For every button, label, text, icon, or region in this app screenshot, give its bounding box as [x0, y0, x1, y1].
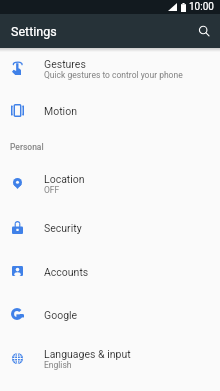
- staticText: Motion: [44, 105, 77, 117]
- staticText: Location: [44, 173, 85, 185]
- staticText: English: [44, 360, 72, 370]
- staticText: Accounts: [44, 266, 89, 278]
- button[interactable]: Google: [0, 292, 220, 336]
- button[interactable]: Accounts: [0, 249, 220, 293]
- staticText: OFF: [44, 185, 60, 195]
- staticText: Settings: [11, 24, 57, 39]
- button[interactable]: Search: [193, 20, 215, 42]
- staticText: Gestures: [44, 58, 86, 70]
- button[interactable]: Gestures: [0, 46, 220, 90]
- staticText: Security: [44, 222, 82, 234]
- button[interactable]: Security: [0, 205, 220, 249]
- button[interactable]: Motion: [0, 88, 220, 132]
- button[interactable]: Location: [0, 161, 220, 205]
- staticText: Quick gestures to control your phone: [44, 70, 183, 80]
- staticText: Google: [44, 309, 78, 321]
- button[interactable]: Languages & input: [0, 336, 220, 380]
- staticText: Personal: [10, 142, 44, 152]
- staticText: Languages & input: [44, 348, 131, 360]
- staticText: 10:00: [189, 1, 214, 13]
